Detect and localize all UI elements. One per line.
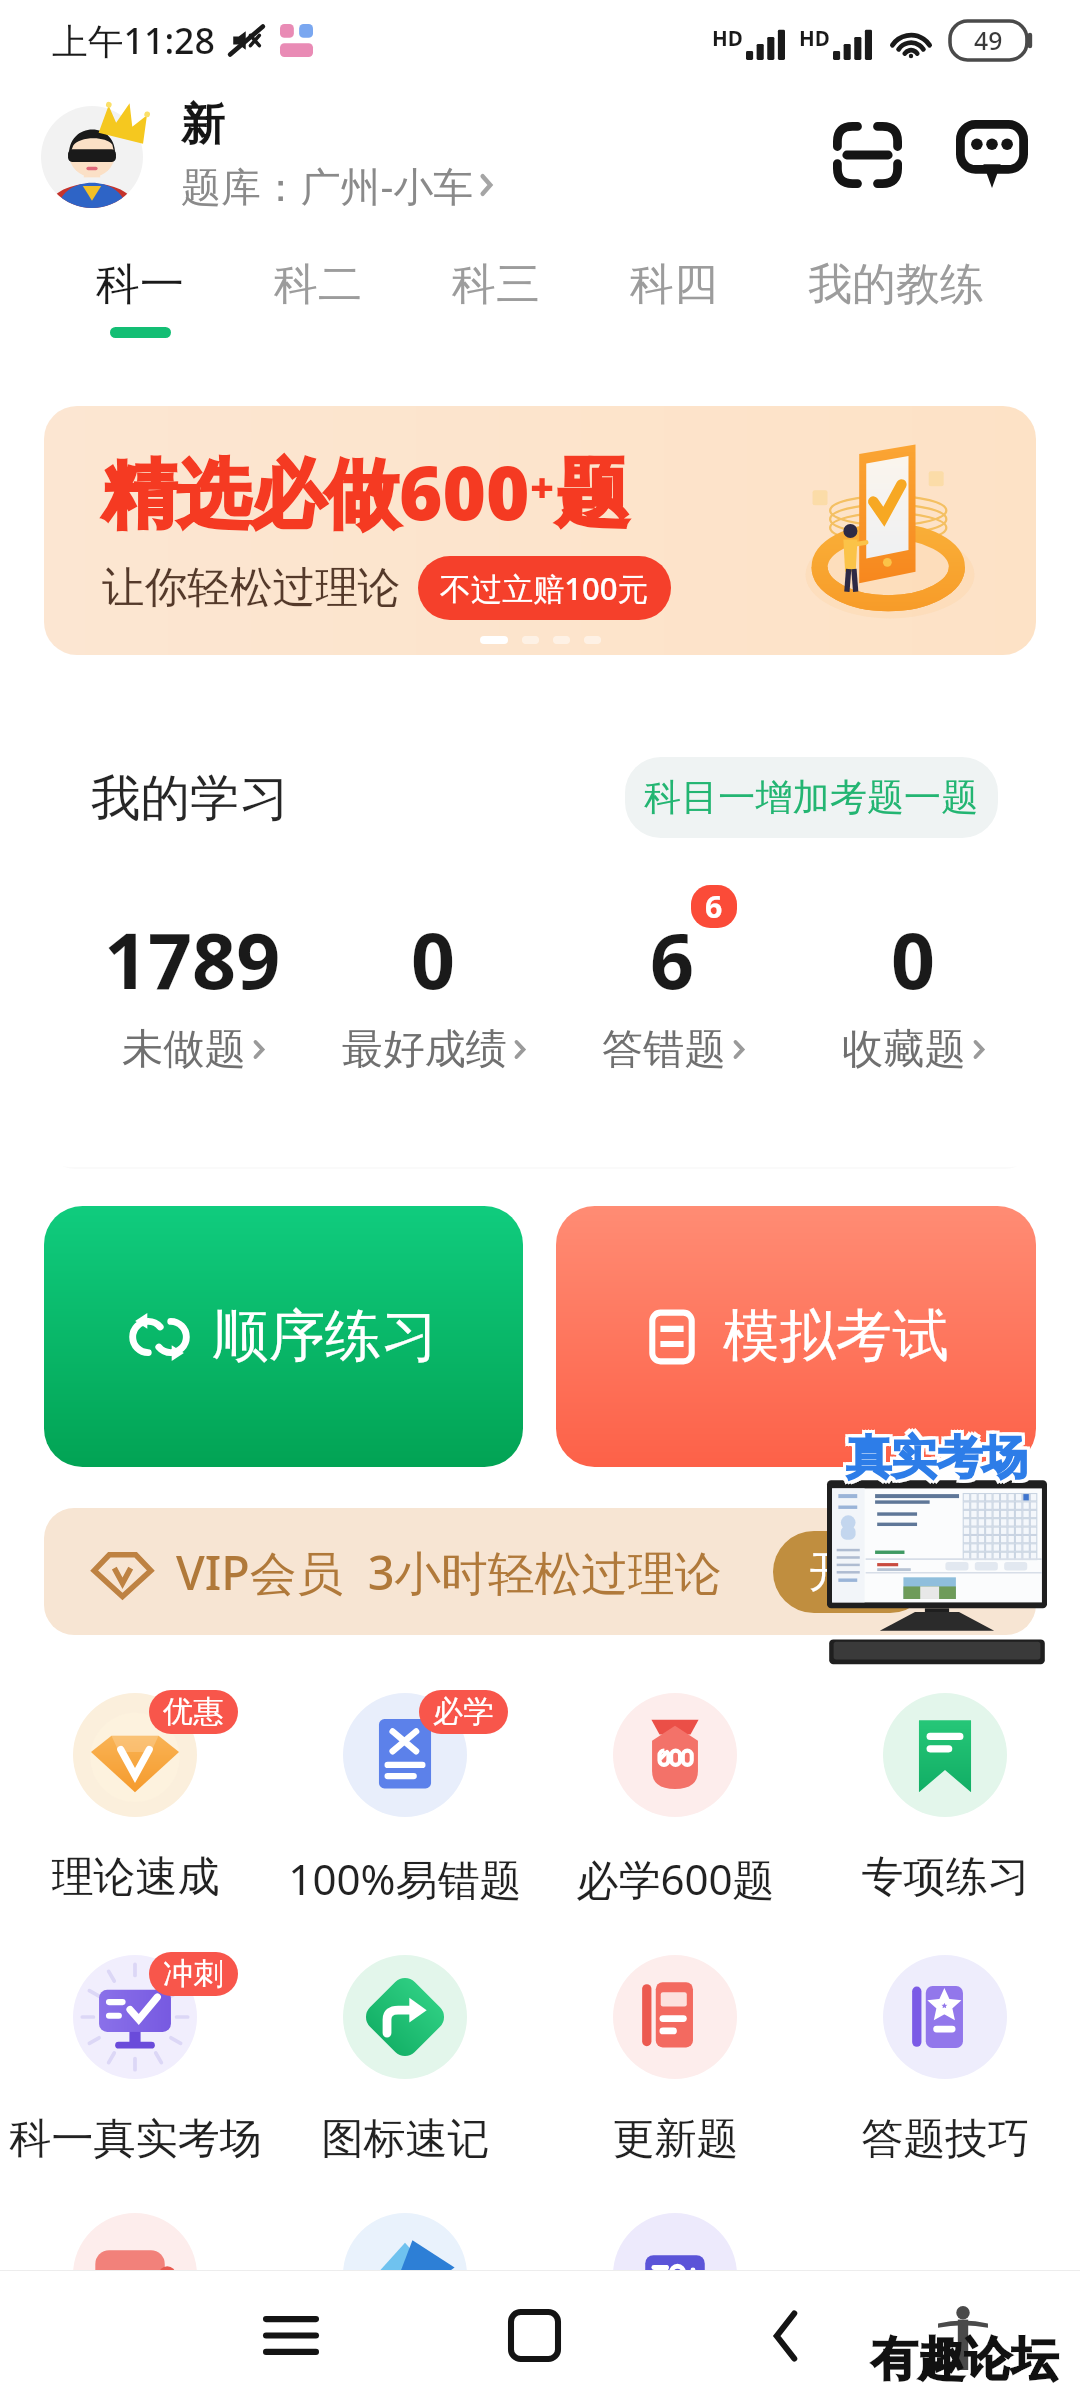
staticText: 科二 xyxy=(274,257,362,312)
staticText: 必学 xyxy=(433,1693,494,1731)
button[interactable]: 科四 xyxy=(630,257,718,338)
staticText: 冲刺 xyxy=(163,1955,224,1993)
button[interactable]: 科三 xyxy=(452,257,540,338)
staticText: 题库：广州-小车 xyxy=(181,158,473,212)
staticText: 新 xyxy=(181,97,225,152)
staticText: 科目一增加考题一题 xyxy=(644,774,979,821)
staticText: 精选必做600 xyxy=(102,441,530,542)
staticText: 真实考场 xyxy=(846,1429,1028,1486)
staticText: 我的教练 xyxy=(808,257,984,312)
staticText: 图标速记 xyxy=(321,2112,490,2165)
staticText: 有趣论坛 xyxy=(871,2330,1058,2389)
staticText: 未做题 xyxy=(122,1023,246,1075)
button[interactable]: Home xyxy=(492,2293,577,2378)
staticText: 题 xyxy=(555,448,630,542)
staticText: 真实考场 xyxy=(849,1429,1031,1486)
staticText: 科一真实考场 xyxy=(9,2112,262,2165)
staticText: 1789 xyxy=(104,907,281,1012)
button[interactable]: 图标速记 xyxy=(270,1955,540,2165)
button[interactable]: VIP会员 3小时轻松过理论 xyxy=(44,1508,1036,1635)
staticText: 100%易错题 xyxy=(288,1850,522,1907)
button[interactable]: Recent apps xyxy=(248,2293,333,2378)
staticText: 答题技巧 xyxy=(861,2112,1030,2165)
staticText: 49 xyxy=(974,24,1003,58)
staticText: 收藏题 xyxy=(842,1023,966,1075)
button[interactable]: 精选必做600 xyxy=(44,406,1036,655)
staticText: HD xyxy=(799,24,830,52)
staticText: 科四 xyxy=(630,257,718,312)
button[interactable] xyxy=(39,688,1041,1167)
button[interactable]: 必学600题 xyxy=(540,1693,810,1907)
staticText: 真实考场 xyxy=(846,1426,1028,1483)
staticText: 答错题 xyxy=(602,1023,726,1075)
staticText: 真实考场 xyxy=(843,1432,1025,1489)
button[interactable] xyxy=(270,2213,540,2370)
button[interactable]: 优惠 xyxy=(0,1693,270,1903)
button[interactable]: 科一 xyxy=(96,257,184,338)
staticText: 专项练习 xyxy=(861,1850,1030,1903)
button[interactable] xyxy=(0,2213,270,2370)
staticText: 0 xyxy=(411,907,456,1012)
staticText: 6 xyxy=(705,886,723,927)
button[interactable]: 冲刺 xyxy=(0,1955,270,2165)
button[interactable]: Messages xyxy=(950,113,1033,196)
staticText: 真实考场 xyxy=(849,1426,1031,1483)
button[interactable]: 0 xyxy=(313,907,553,1075)
button[interactable]: 顺序练习 xyxy=(44,1206,523,1467)
staticText: 顺序练习 xyxy=(212,1301,438,1372)
button[interactable]: 开通 xyxy=(773,1531,931,1613)
button[interactable]: 1789 xyxy=(72,907,313,1075)
staticText: 科三 xyxy=(452,257,540,312)
button[interactable]: 0 xyxy=(793,907,1033,1075)
button[interactable]: 科目一增加考题一题 xyxy=(625,757,998,838)
staticText: + xyxy=(530,459,555,515)
staticText: 优惠 xyxy=(163,1693,224,1731)
button[interactable]: 答题技巧 xyxy=(810,1955,1080,2165)
staticText: 真实考场 xyxy=(846,1432,1028,1489)
staticText: 真实考场 xyxy=(843,1426,1025,1483)
staticText: VIP会员 3小时轻松过理论 xyxy=(176,1540,722,1604)
button[interactable]: Back xyxy=(743,2293,828,2378)
staticText: 最好成绩 xyxy=(342,1023,507,1075)
button[interactable]: 6 xyxy=(553,907,793,1075)
button[interactable]: 科二 xyxy=(274,257,362,338)
button[interactable]: 模拟考试 xyxy=(556,1206,1036,1467)
staticText: 理论速成 xyxy=(51,1850,220,1903)
staticText: 开通 xyxy=(809,1545,895,1599)
button[interactable] xyxy=(810,2213,1080,2370)
staticText: 真实考场 xyxy=(849,1432,1031,1489)
staticText: 0 xyxy=(891,907,936,1012)
button[interactable]: 我的教练 xyxy=(808,257,984,338)
button[interactable]: 更新题 xyxy=(540,1955,810,2165)
staticText: HD xyxy=(712,24,743,52)
staticText: 更新题 xyxy=(612,2112,739,2165)
staticText: 6 xyxy=(650,907,695,1012)
staticText: 真实考场 xyxy=(843,1429,1025,1486)
button[interactable]: 必学 xyxy=(270,1693,540,1907)
button[interactable]: Scan code xyxy=(826,113,909,196)
staticText: 不过立赔100元 xyxy=(440,567,649,609)
button[interactable] xyxy=(540,2213,810,2370)
staticText: 模拟考试 xyxy=(723,1301,949,1372)
staticText: 让你轻松过理论 xyxy=(102,561,401,615)
staticText: 我的学习 xyxy=(91,767,289,829)
staticText: 上午11:28 xyxy=(52,16,216,65)
button[interactable]: 专项练习 xyxy=(810,1693,1080,1903)
staticText: 科一 xyxy=(96,257,184,312)
staticText: 必学600题 xyxy=(576,1850,775,1907)
